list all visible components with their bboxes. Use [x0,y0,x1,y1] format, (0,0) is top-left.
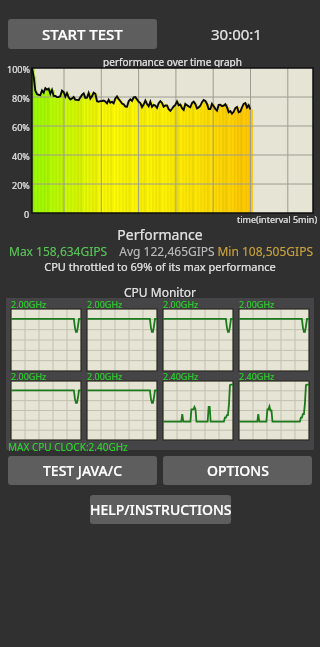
staticText: 80% [12,92,30,104]
staticText: 2.00GHz [11,298,47,310]
staticText: 30:00:1 [211,24,262,44]
staticText: 60% [12,121,30,133]
staticText: Max 158,634GIPS [9,243,119,259]
staticText: 100% [7,63,30,75]
staticText: CPU throttled to 69% of its max performa… [0,259,320,274]
staticText: 2.40GHz [239,370,275,382]
staticText: time(interval 5min) [237,213,318,225]
staticText: MAX CPU CLOCK:2.40GHz [8,440,128,454]
staticText: 2.00GHz [239,298,275,310]
staticText: 20% [12,179,30,191]
staticText: 2.00GHz [163,298,199,310]
staticText: Performance [0,225,320,244]
staticText: Min 108,505GIPS [203,243,313,259]
staticText: HELP/INSTRUCTIONS [90,500,231,519]
staticText: 2.00GHz [87,298,123,310]
staticText: OPTIONS [207,461,269,480]
staticText: 0 [24,208,30,220]
staticText: performance over time graph [32,55,313,69]
staticText: 2.00GHz [87,370,123,382]
staticText: 2.40GHz [163,370,199,382]
button[interactable]: OPTIONS [163,456,312,485]
staticText: TEST JAVA/C [43,461,123,480]
staticText: START TEST [42,24,123,44]
staticText: CPU Monitor [0,284,320,300]
button[interactable]: HELP/INSTRUCTIONS [90,495,231,524]
staticText: 2.00GHz [11,370,47,382]
button[interactable]: START TEST [8,19,157,49]
staticText: 40% [12,150,30,162]
staticText: Avg 122,465GIPS [112,243,222,259]
button[interactable]: TEST JAVA/C [8,456,157,485]
